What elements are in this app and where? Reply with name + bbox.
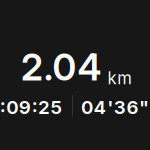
staticText: 0:09:25 <box>0 96 63 119</box>
staticText: km <box>107 68 132 88</box>
staticText: 04'36" <box>81 96 149 119</box>
staticText: 2.04 <box>21 45 101 89</box>
